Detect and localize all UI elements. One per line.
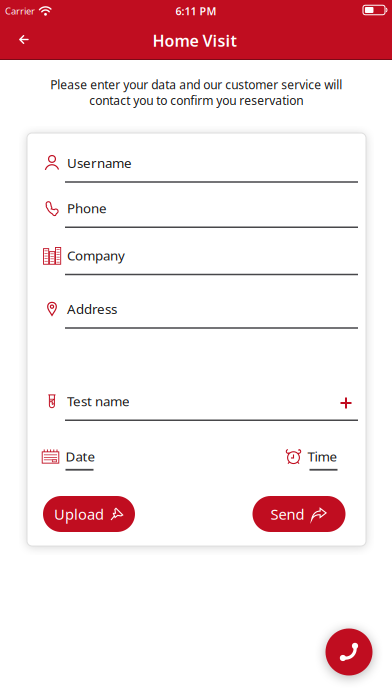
staticText: Test name bbox=[67, 392, 130, 410]
button[interactable]: Send bbox=[252, 496, 345, 532]
staticText: Carrier bbox=[5, 5, 35, 17]
staticText: Address bbox=[67, 300, 117, 318]
staticText: 6:11 PM bbox=[175, 4, 216, 18]
button[interactable]: Phone bbox=[27, 197, 366, 228]
button[interactable] bbox=[333, 390, 359, 416]
button[interactable]: Company bbox=[27, 244, 366, 275]
button[interactable] bbox=[9, 26, 39, 52]
staticText: Please enter your data and our customer … bbox=[50, 77, 342, 108]
staticText: Date bbox=[65, 447, 95, 465]
button[interactable]: Address bbox=[27, 298, 366, 329]
button[interactable]: Date bbox=[41, 447, 95, 471]
button[interactable]: Upload bbox=[43, 496, 135, 532]
staticText: Company bbox=[67, 246, 125, 264]
button[interactable] bbox=[325, 628, 372, 675]
staticText: Username bbox=[67, 154, 132, 172]
button[interactable]: Username bbox=[27, 152, 366, 183]
staticText: Send bbox=[270, 504, 304, 524]
staticText: Upload bbox=[54, 504, 104, 524]
button[interactable]: Test name bbox=[27, 390, 366, 421]
staticText: Phone bbox=[67, 199, 107, 217]
staticText: Time bbox=[307, 447, 337, 465]
button[interactable]: Time bbox=[285, 447, 337, 471]
staticText: Home Visit bbox=[152, 30, 236, 51]
